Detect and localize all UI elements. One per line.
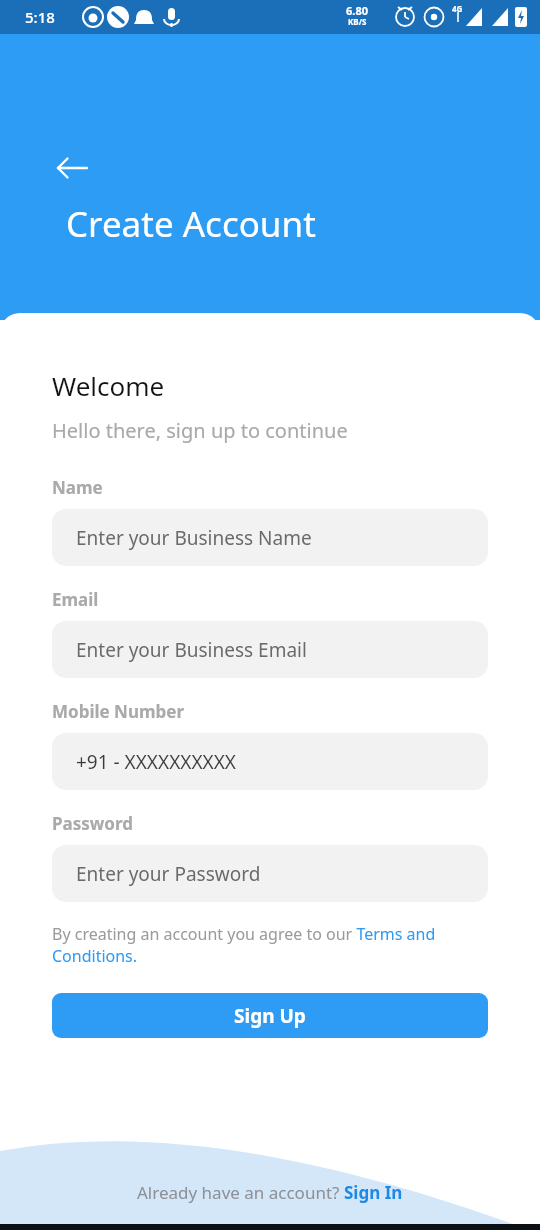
staticText: 5:18 xyxy=(25,7,55,27)
button[interactable]: Already have an account? xyxy=(137,1181,403,1204)
staticText: Enter your Business Name xyxy=(76,525,312,551)
staticText: Mobile Number xyxy=(52,700,185,723)
staticText: Name xyxy=(52,476,103,499)
button[interactable]: Enter your Business Email xyxy=(52,621,488,678)
staticText: Welcome xyxy=(52,368,165,403)
staticText: Enter your Business Email xyxy=(76,637,307,663)
button[interactable]: Enter your Business Name xyxy=(52,509,488,566)
button[interactable]: Sign Up xyxy=(52,993,488,1038)
staticText: Already have an account? xyxy=(137,1181,344,1204)
staticText: 4G xyxy=(452,3,463,14)
staticText: KB/S xyxy=(348,16,367,27)
button[interactable]: Back xyxy=(56,146,102,190)
staticText: Create Account xyxy=(66,200,316,248)
staticText: +91 - XXXXXXXXXX xyxy=(76,749,236,775)
staticText: Hello there, sign up to continue xyxy=(52,417,348,444)
staticText: Email xyxy=(52,588,99,611)
staticText: By creating an account you agree to our … xyxy=(52,923,488,967)
button[interactable]: +91 - XXXXXXXXXX xyxy=(52,733,488,790)
staticText: 6.80 xyxy=(346,3,368,18)
staticText: Password xyxy=(52,812,133,835)
staticText: Sign In xyxy=(344,1181,403,1204)
button[interactable]: Enter your Password xyxy=(52,845,488,902)
button[interactable]: By creating an account you agree to our … xyxy=(52,923,488,967)
staticText: Enter your Password xyxy=(76,861,261,887)
staticText: Sign Up xyxy=(234,1003,306,1029)
